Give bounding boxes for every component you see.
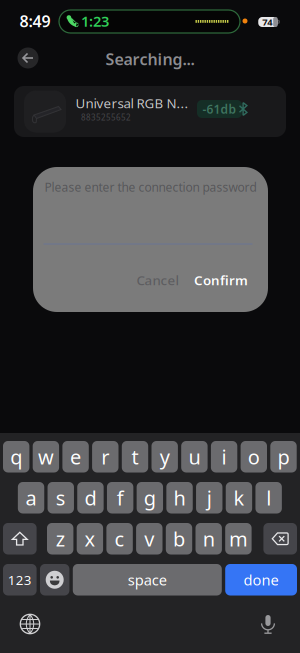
staticText: b: [173, 525, 185, 552]
button[interactable]: Delete: [263, 523, 297, 554]
staticText: 8:49: [19, 10, 50, 32]
button[interactable]: k: [226, 482, 252, 513]
staticText: c: [115, 525, 125, 552]
button[interactable]: h: [166, 482, 193, 513]
staticText: y: [160, 443, 170, 470]
button[interactable]: c: [106, 523, 133, 554]
button[interactable]: b: [166, 523, 192, 554]
staticText: m: [229, 525, 248, 552]
staticText: p: [277, 443, 289, 470]
button[interactable]: j: [196, 482, 222, 513]
button[interactable]: Next keyboard: [19, 613, 40, 634]
button[interactable]: i: [211, 441, 237, 472]
button[interactable]: d: [77, 482, 104, 513]
button[interactable]: v: [136, 523, 162, 554]
button[interactable]: Universal RGB N...: [14, 86, 286, 137]
staticText: x: [84, 525, 95, 552]
button[interactable]: Back: [17, 47, 38, 68]
staticText: v: [144, 525, 154, 552]
staticText: 8835255652: [81, 112, 131, 123]
staticText: f: [117, 484, 124, 511]
staticText: k: [233, 484, 244, 511]
staticText: t: [131, 443, 138, 470]
staticText: Universal RGB N...: [75, 94, 188, 112]
button[interactable]: s: [47, 482, 74, 513]
staticText: l: [266, 484, 271, 511]
button[interactable]: Shift: [3, 523, 37, 554]
button[interactable]: u: [181, 441, 208, 472]
button[interactable]: l: [255, 482, 282, 513]
staticText: i: [222, 443, 227, 470]
staticText: q: [10, 443, 22, 470]
button[interactable]: n: [195, 523, 222, 554]
button[interactable]: y: [151, 441, 178, 472]
staticText: d: [84, 484, 96, 511]
staticText: j: [207, 484, 212, 511]
staticText: Confirm: [194, 271, 248, 289]
button[interactable]: o: [241, 441, 267, 472]
button[interactable]: m: [225, 523, 252, 554]
staticText: h: [174, 484, 186, 511]
button[interactable]: Emoji: [40, 564, 69, 595]
staticText: e: [70, 443, 81, 470]
staticText: 123: [8, 571, 32, 589]
button[interactable]: 123: [3, 564, 37, 595]
button[interactable]: Confirm: [188, 265, 254, 295]
staticText: n: [203, 525, 215, 552]
staticText: r: [101, 443, 109, 470]
button[interactable]: x: [77, 523, 103, 554]
button[interactable]: t: [122, 441, 148, 472]
staticText: g: [144, 484, 156, 511]
staticText: Please enter the connection password: [44, 179, 256, 195]
staticText: Cancel: [136, 271, 179, 289]
staticText: 74: [262, 16, 272, 28]
staticText: 1:23: [81, 11, 109, 31]
button[interactable]: space: [73, 564, 222, 595]
button[interactable]: w: [33, 441, 59, 472]
button[interactable]: p: [270, 441, 297, 472]
staticText: space: [128, 570, 167, 589]
staticText: -61db: [202, 101, 236, 117]
staticText: a: [26, 484, 37, 511]
button[interactable]: done: [225, 564, 297, 595]
button[interactable]: Cancel: [130, 265, 185, 295]
button[interactable]: q: [3, 441, 29, 472]
button[interactable]: z: [47, 523, 73, 554]
button[interactable]: r: [92, 441, 118, 472]
staticText: z: [56, 525, 65, 552]
button[interactable]: e: [62, 441, 89, 472]
button[interactable]: a: [18, 482, 44, 513]
staticText: done: [244, 570, 279, 589]
button[interactable]: Dictation: [260, 614, 276, 634]
button[interactable]: g: [137, 482, 163, 513]
button[interactable]: f: [107, 482, 133, 513]
staticText: Searching...: [105, 48, 194, 70]
staticText: o: [248, 443, 260, 470]
staticText: s: [56, 484, 66, 511]
staticText: u: [188, 443, 200, 470]
staticText: w: [38, 443, 54, 470]
